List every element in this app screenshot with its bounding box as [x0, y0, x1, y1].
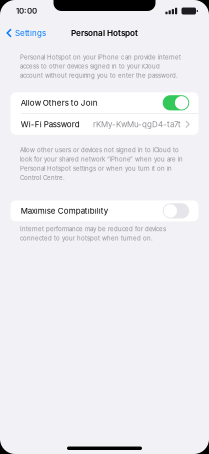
staticText: Internet performance may be reduced for …: [20, 225, 166, 233]
staticText: Personal Hotspot on your iPhone can prov…: [20, 53, 181, 61]
staticText: rKMy-KwMu-qgD4-ta7t: [93, 119, 181, 129]
staticText: 10:00: [16, 6, 37, 16]
staticText: look for your shared network “iPhone” wh…: [20, 156, 183, 163]
staticText: Control Centre.: [20, 174, 65, 181]
button[interactable]: Wi-Fi Password: [10, 114, 198, 135]
staticText: Personal Hotspot settings or when you tu…: [20, 165, 172, 172]
button[interactable]: Settings: [0, 24, 53, 42]
staticText: Wi-Fi Password: [21, 119, 80, 129]
staticText: connected to your hotspot when turned on…: [20, 235, 153, 242]
staticText: Personal Hotspot: [71, 28, 138, 38]
button[interactable]: Maximise Compatibility: [10, 200, 198, 221]
staticText: Allow other users or devices not signed …: [20, 146, 179, 154]
staticText: Settings: [15, 28, 46, 38]
staticText: Allow Others to Join: [21, 98, 98, 108]
staticText: Maximise Compatibility: [21, 206, 108, 216]
staticText: access to other devices signed in to you…: [20, 63, 160, 70]
button[interactable]: Allow Others to Join: [10, 92, 198, 113]
staticText: account without requiring you to enter t…: [20, 72, 178, 79]
